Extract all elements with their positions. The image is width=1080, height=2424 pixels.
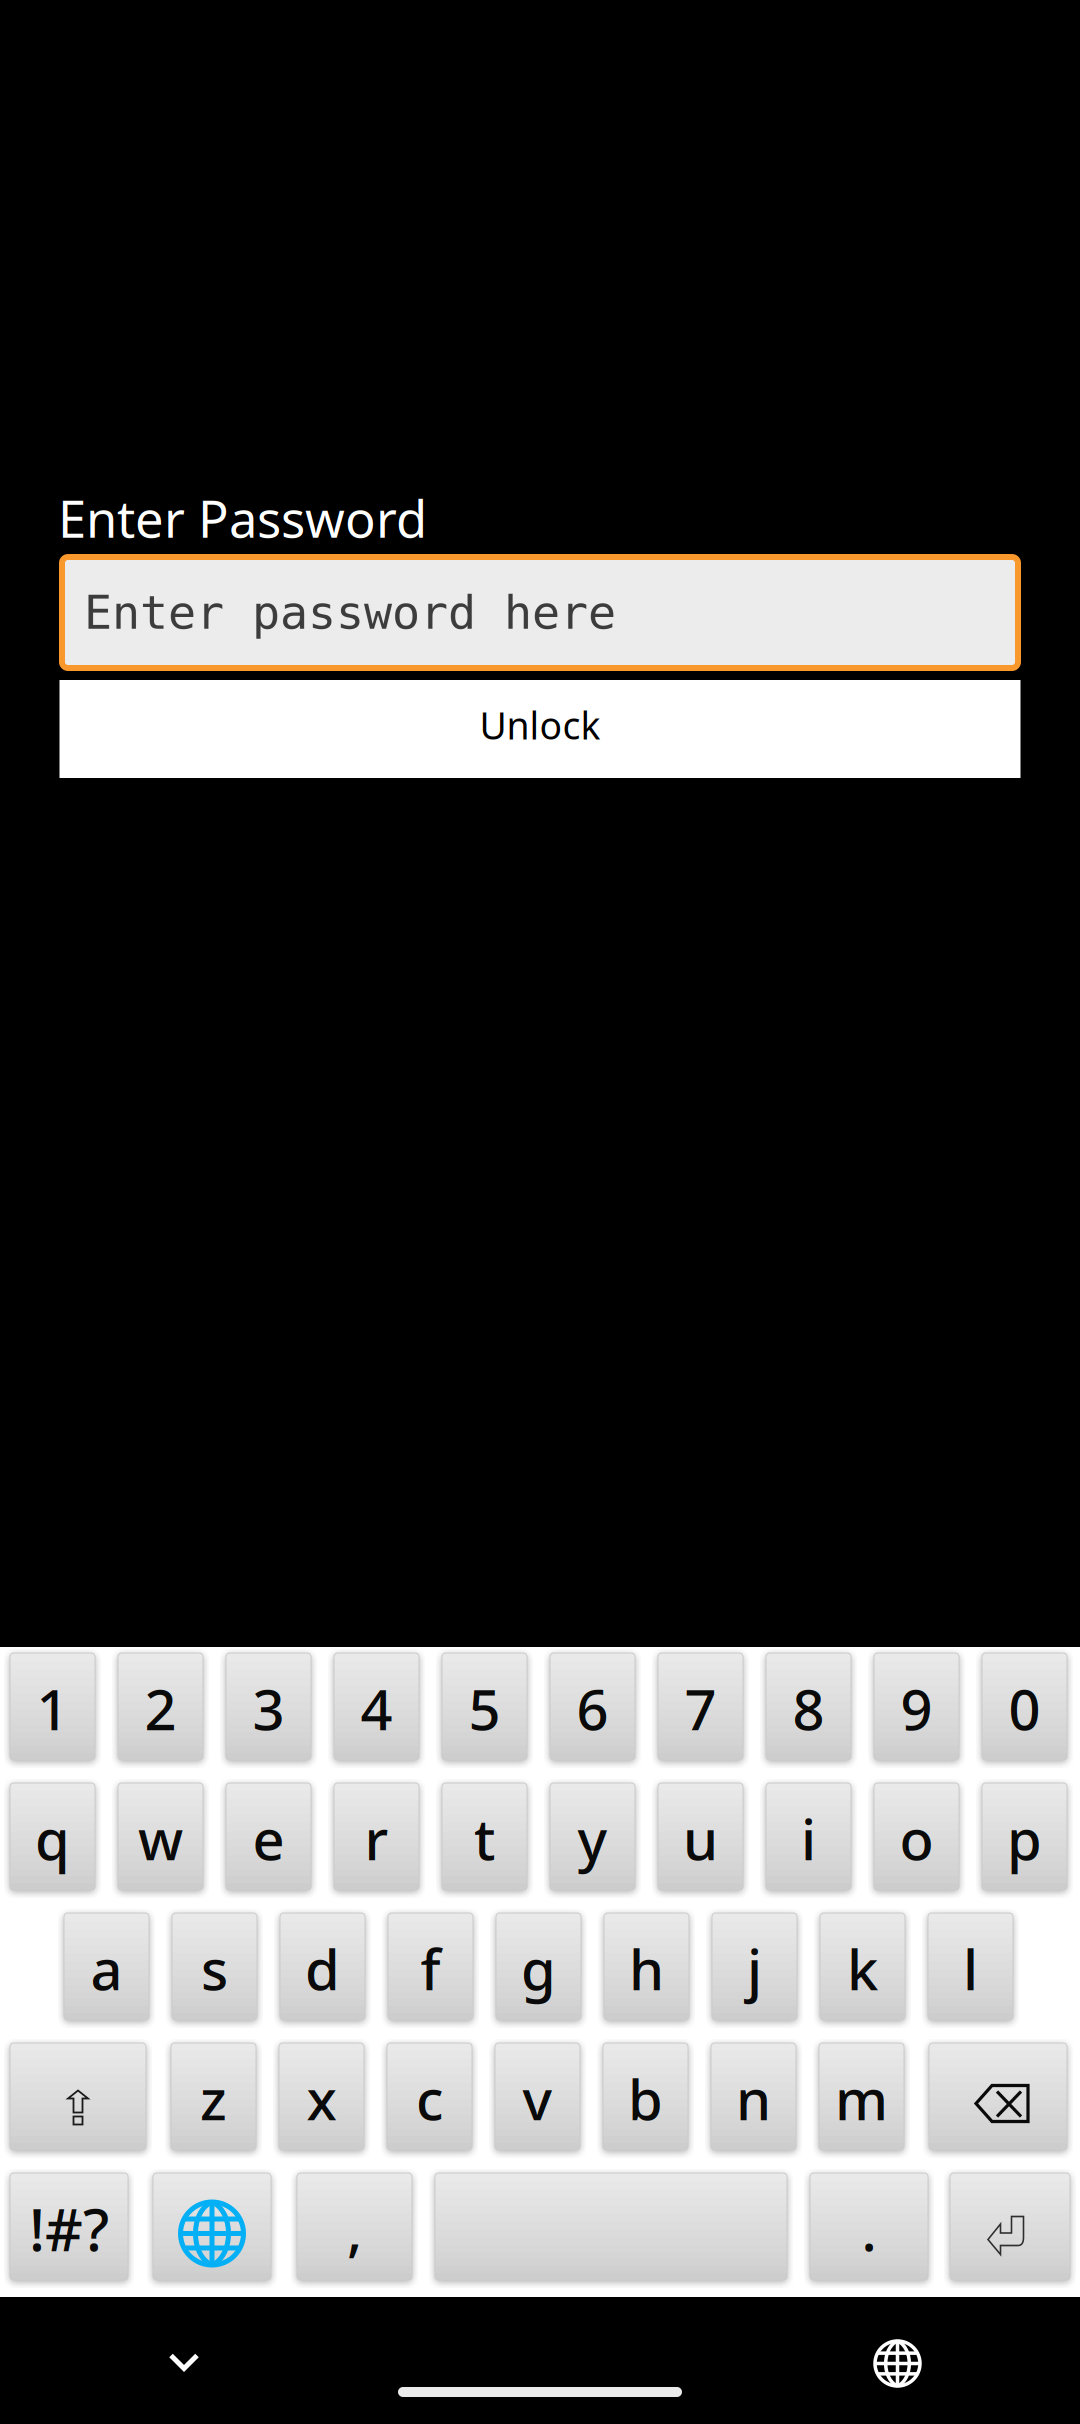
staticText: h xyxy=(629,1931,664,2006)
staticText: j xyxy=(747,1931,762,2006)
button[interactable]: Unlock xyxy=(59,680,1020,778)
staticText: d xyxy=(305,1931,340,2006)
button[interactable]: m xyxy=(819,2043,904,2150)
button[interactable]: 3 xyxy=(226,1653,311,1760)
staticText: Enter Password xyxy=(58,484,427,552)
button[interactable]: 8 xyxy=(766,1653,851,1760)
staticText: f xyxy=(420,1931,440,2006)
button[interactable]: v xyxy=(495,2043,580,2150)
staticText: p xyxy=(1007,1801,1042,1876)
button[interactable]: 7 xyxy=(658,1653,743,1760)
button[interactable]: Change keyboard xyxy=(851,2317,944,2410)
staticText: v xyxy=(522,2061,552,2136)
button[interactable]: . xyxy=(810,2173,928,2280)
staticText: i xyxy=(801,1801,816,1876)
staticText: l xyxy=(963,1931,978,2006)
button[interactable]: g xyxy=(496,1913,581,2020)
button[interactable]: 6 xyxy=(550,1653,635,1760)
button[interactable]: e xyxy=(226,1783,311,1890)
button[interactable]: , xyxy=(297,2173,412,2280)
button[interactable]: i xyxy=(766,1783,851,1890)
button[interactable]: r xyxy=(334,1783,419,1890)
staticText: Enter password here xyxy=(84,586,616,639)
button[interactable]: q xyxy=(10,1783,95,1890)
button[interactable]: d xyxy=(280,1913,365,2020)
staticText: t xyxy=(474,1801,495,1876)
staticText: , xyxy=(347,2192,362,2267)
button[interactable]: Delete xyxy=(929,2043,1067,2150)
button[interactable]: 4 xyxy=(334,1653,419,1760)
staticText: s xyxy=(201,1931,228,2006)
staticText: g xyxy=(521,1931,556,2006)
staticText: 2 xyxy=(144,1671,176,1746)
button[interactable]: Shift xyxy=(10,2043,146,2150)
staticText: 0 xyxy=(1008,1671,1040,1746)
staticText: n xyxy=(736,2061,771,2136)
staticText: 5 xyxy=(468,1671,500,1746)
button[interactable]: 1 xyxy=(10,1653,95,1760)
button[interactable]: n xyxy=(711,2043,796,2150)
staticText: 6 xyxy=(576,1671,608,1746)
staticText: 7 xyxy=(684,1671,716,1746)
staticText: b xyxy=(628,2061,663,2136)
button[interactable]: l xyxy=(928,1913,1013,2020)
staticText: y xyxy=(577,1801,607,1876)
button[interactable]: j xyxy=(712,1913,797,2020)
staticText: Unlock xyxy=(479,700,600,750)
button[interactable]: Return xyxy=(950,2173,1070,2280)
button[interactable]: x xyxy=(279,2043,364,2150)
button[interactable]: 5 xyxy=(442,1653,527,1760)
staticText: !#? xyxy=(29,2189,109,2267)
button[interactable]: k xyxy=(820,1913,905,2020)
button[interactable]: 0 xyxy=(982,1653,1067,1760)
button[interactable]: h xyxy=(604,1913,689,2020)
staticText: k xyxy=(847,1931,878,2006)
staticText: 9 xyxy=(900,1671,932,1746)
button[interactable]: u xyxy=(658,1783,743,1890)
button[interactable]: w xyxy=(118,1783,203,1890)
button[interactable]: z xyxy=(171,2043,256,2150)
button[interactable]: a xyxy=(64,1913,149,2020)
staticText: a xyxy=(90,1931,122,2006)
staticText: r xyxy=(364,1801,388,1876)
button[interactable]: t xyxy=(442,1783,527,1890)
staticText: w xyxy=(138,1801,183,1876)
button[interactable]: Space xyxy=(435,2173,787,2280)
staticText: e xyxy=(252,1801,284,1876)
staticText: q xyxy=(35,1801,70,1876)
staticText: u xyxy=(683,1801,718,1876)
staticText: . xyxy=(861,2192,876,2267)
button[interactable]: 2 xyxy=(118,1653,203,1760)
staticText: 3 xyxy=(252,1671,284,1746)
staticText: z xyxy=(200,2061,227,2136)
button[interactable]: 9 xyxy=(874,1653,959,1760)
staticText: 1 xyxy=(36,1671,68,1746)
staticText: 4 xyxy=(360,1671,392,1746)
button[interactable]: c xyxy=(387,2043,472,2150)
button[interactable]: o xyxy=(874,1783,959,1890)
button[interactable]: Switch keyboard xyxy=(153,2173,271,2280)
button[interactable]: p xyxy=(982,1783,1067,1890)
staticText: x xyxy=(306,2061,336,2136)
button[interactable]: y xyxy=(550,1783,635,1890)
staticText: m xyxy=(835,2061,888,2136)
button[interactable]: !#? xyxy=(10,2173,128,2280)
button[interactable]: s xyxy=(172,1913,257,2020)
button[interactable]: f xyxy=(388,1913,473,2020)
staticText: c xyxy=(416,2061,443,2136)
staticText: o xyxy=(899,1801,933,1876)
button[interactable]: b xyxy=(603,2043,688,2150)
staticText: 8 xyxy=(792,1671,824,1746)
button[interactable]: Hide keyboard xyxy=(144,2328,224,2398)
